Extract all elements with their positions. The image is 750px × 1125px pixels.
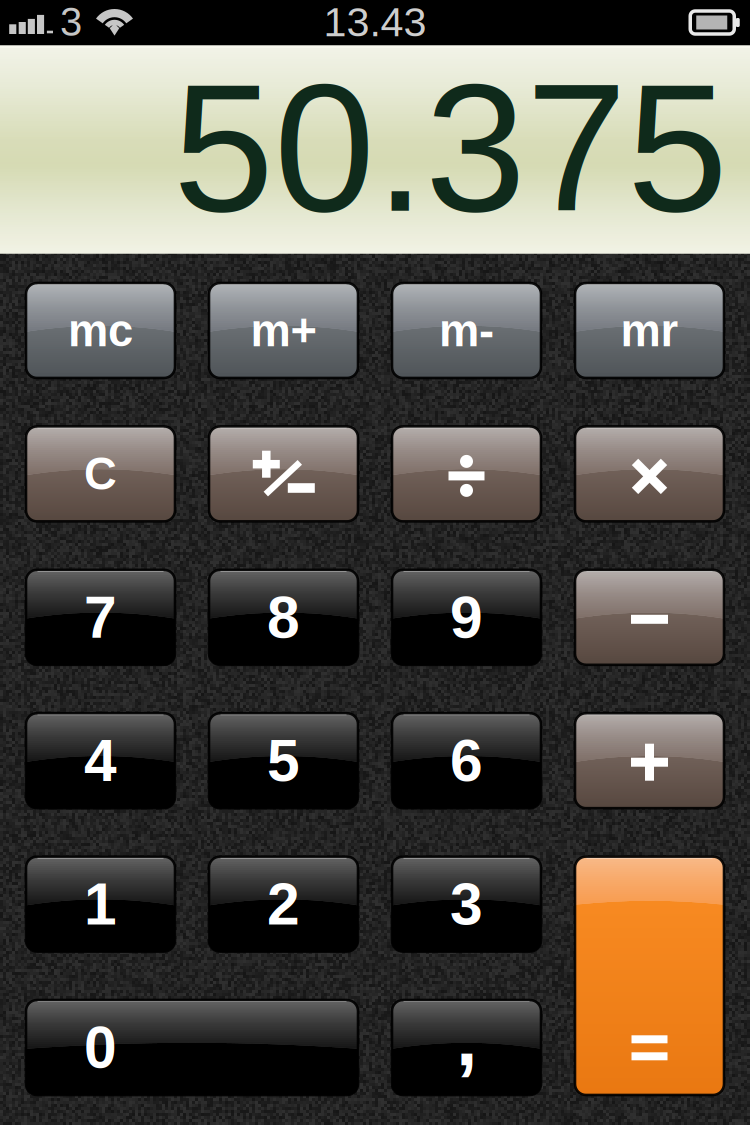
button[interactable]: memory recall: [575, 283, 724, 378]
button[interactable]: 3: [392, 857, 541, 952]
staticText: mr: [620, 305, 678, 356]
button[interactable]: memory add: [209, 283, 358, 378]
staticText: m-: [439, 305, 494, 356]
button[interactable]: minus: [575, 570, 724, 665]
button[interactable]: 1: [26, 857, 175, 952]
button[interactable]: divide: [392, 426, 541, 521]
staticText: 2: [267, 871, 300, 937]
button[interactable]: 7: [26, 570, 175, 665]
staticText: 4: [84, 728, 117, 793]
button[interactable]: multiply: [575, 426, 724, 521]
button[interactable]: 8: [209, 570, 358, 665]
staticText: 1: [84, 871, 117, 937]
staticText: mc: [68, 305, 133, 356]
button[interactable]: plus: [575, 713, 724, 808]
staticText: 8: [267, 584, 300, 650]
button[interactable]: memory subtract: [392, 283, 541, 378]
button[interactable]: 4: [26, 713, 175, 808]
staticText: 6: [450, 728, 483, 793]
staticText: 3: [450, 871, 483, 937]
staticText: 9: [450, 584, 483, 650]
button[interactable]: 2: [209, 857, 358, 952]
button[interactable]: decimal separator: [392, 1000, 541, 1095]
button[interactable]: equals: [575, 857, 724, 1095]
button[interactable]: memory clear: [26, 283, 175, 378]
button[interactable]: 6: [392, 713, 541, 808]
button[interactable]: plus minus: [209, 426, 358, 521]
staticText: C: [84, 449, 117, 499]
button[interactable]: clear: [26, 426, 175, 521]
staticText: m+: [250, 305, 316, 356]
staticText: 7: [84, 584, 117, 650]
staticText: 5: [267, 728, 300, 793]
button[interactable]: 5: [209, 713, 358, 808]
staticText: 13.43: [323, 0, 426, 45]
staticText: 3: [60, 0, 82, 44]
staticText: 0: [84, 1015, 117, 1080]
staticText: 50.375: [173, 47, 728, 249]
button[interactable]: 9: [392, 570, 541, 665]
staticText: ,: [456, 995, 477, 1082]
button[interactable]: 0: [26, 1000, 358, 1095]
